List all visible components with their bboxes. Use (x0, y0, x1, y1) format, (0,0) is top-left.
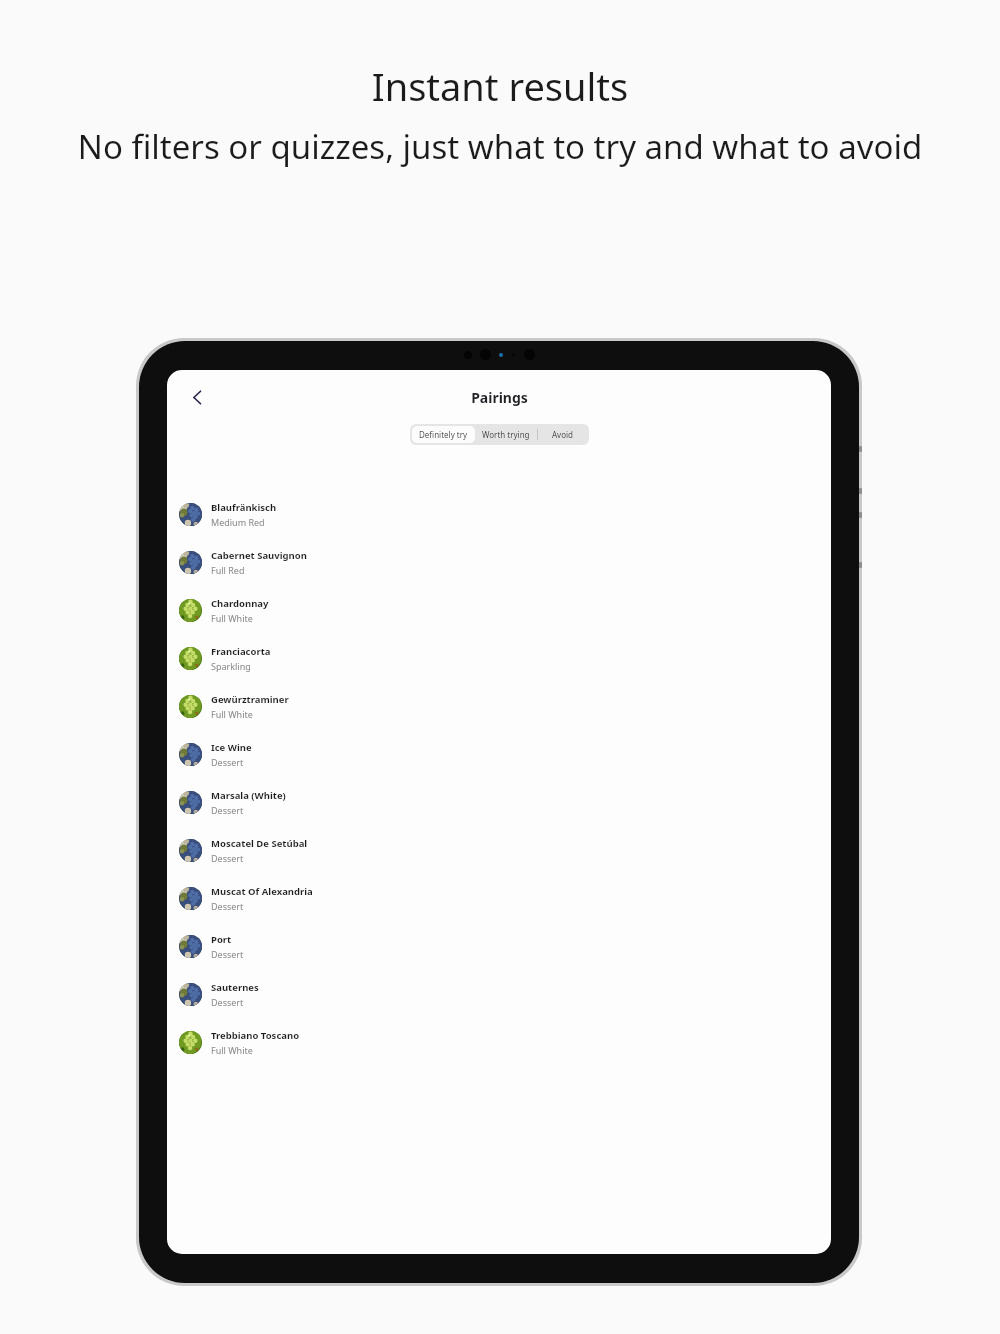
staticText: Pairings (471, 388, 528, 407)
staticText: Full White (211, 708, 253, 720)
staticText: Franciacorta (211, 645, 271, 658)
staticText: Port (211, 933, 232, 946)
button[interactable]: Back (180, 380, 214, 414)
staticText: Full Red (211, 564, 245, 576)
button[interactable]: Muscat Of Alexandria (179, 874, 831, 922)
button[interactable]: Definitely try (419, 426, 468, 443)
staticText: Blaufränkisch (211, 501, 277, 514)
staticText: Full White (211, 1044, 253, 1056)
button[interactable]: Blaufränkisch (179, 490, 831, 538)
button[interactable]: Cabernet Sauvignon (179, 538, 831, 586)
staticText: Instant results (0, 60, 1000, 112)
staticText: Marsala (White) (211, 789, 286, 802)
staticText: Medium Red (211, 516, 265, 528)
staticText: Dessert (211, 948, 244, 960)
staticText: Sauternes (211, 981, 259, 994)
staticText: Gewürztraminer (211, 693, 289, 706)
staticText: Chardonnay (211, 597, 269, 610)
button[interactable]: Moscatel De Setúbal (179, 826, 831, 874)
staticText: Sparkling (211, 660, 251, 672)
button[interactable]: Worth trying (482, 426, 530, 443)
staticText: No filters or quizzes, just what to try … (0, 124, 1000, 169)
staticText: Full White (211, 612, 253, 624)
staticText: Muscat Of Alexandria (211, 885, 313, 898)
button[interactable]: Franciacorta (179, 634, 831, 682)
button[interactable]: Sauternes (179, 970, 831, 1018)
button[interactable]: Marsala (White) (179, 778, 831, 826)
button[interactable]: Trebbiano Toscano (179, 1018, 831, 1066)
staticText: Moscatel De Setúbal (211, 837, 308, 850)
staticText: Ice Wine (211, 741, 252, 754)
staticText: Avoid (552, 429, 573, 440)
staticText: Cabernet Sauvignon (211, 549, 307, 562)
staticText: Worth trying (482, 429, 530, 440)
button[interactable]: Ice Wine (179, 730, 831, 778)
staticText: Dessert (211, 804, 244, 816)
staticText: Dessert (211, 996, 244, 1008)
staticText: Dessert (211, 852, 244, 864)
button[interactable]: Avoid (552, 426, 573, 443)
button[interactable]: Port (179, 922, 831, 970)
staticText: Definitely try (419, 429, 468, 440)
staticText: Dessert (211, 756, 244, 768)
button[interactable]: Chardonnay (179, 586, 831, 634)
staticText: Dessert (211, 900, 244, 912)
staticText: Trebbiano Toscano (211, 1029, 300, 1042)
button[interactable]: Gewürztraminer (179, 682, 831, 730)
